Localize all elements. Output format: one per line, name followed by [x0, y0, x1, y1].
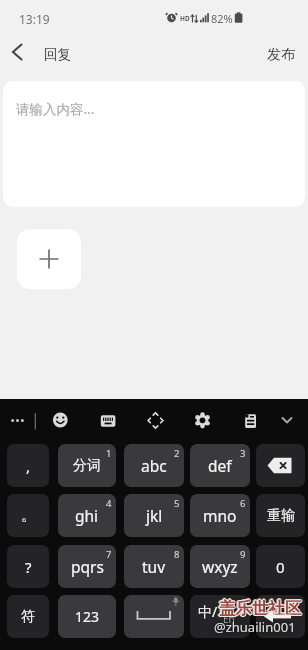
staticText: 中/ [198, 602, 218, 621]
button[interactable]: tuv [124, 545, 184, 588]
staticText: 分词 [73, 457, 101, 475]
staticText: 符 [21, 608, 35, 626]
staticText: 盖乐世社区 [219, 599, 302, 620]
staticText: 8 [174, 548, 180, 561]
staticText: ? [25, 557, 32, 577]
button[interactable]: abc [124, 444, 184, 487]
staticText: 82% [211, 11, 233, 26]
button[interactable]: 分词 [58, 444, 116, 487]
staticText: 请输入内容... [16, 100, 95, 118]
button[interactable] [256, 444, 305, 487]
staticText: 7 [106, 548, 112, 561]
staticText: 3 [240, 447, 246, 460]
staticText: 盖乐世社区 [217, 598, 300, 619]
button[interactable] [17, 229, 81, 289]
button[interactable] [124, 595, 184, 638]
staticText: abc [141, 455, 167, 476]
staticText: , [26, 456, 31, 476]
staticText: En [223, 612, 235, 626]
staticText: mno [203, 505, 237, 526]
staticText: 13:19 [19, 11, 50, 27]
staticText: 盖乐世社区 [219, 599, 302, 620]
button[interactable]: 0 [256, 545, 305, 588]
staticText: 2 [174, 447, 180, 460]
staticText: 6 [240, 497, 246, 510]
staticText: 回复 [44, 46, 71, 63]
button[interactable]: ghi [58, 494, 116, 537]
button[interactable]: pqrs [58, 545, 116, 588]
button[interactable]: ? [7, 545, 49, 588]
staticText: 1 [106, 447, 112, 460]
staticText: jkl [146, 505, 163, 526]
button[interactable]: 重输 [256, 494, 305, 537]
staticText: 盖乐世社区 [219, 597, 302, 618]
staticText: def [208, 455, 232, 476]
button[interactable]: , [7, 444, 49, 487]
button[interactable]: def [190, 444, 250, 487]
staticText: 重输 [267, 507, 295, 525]
button[interactable] [4, 38, 32, 66]
button[interactable]: 符 [7, 595, 49, 638]
button[interactable]: 123 [58, 595, 116, 638]
staticText: 4 [106, 497, 112, 510]
button[interactable]: wxyz [190, 545, 250, 588]
staticText: HD [180, 14, 190, 23]
button[interactable]: 。 [7, 494, 49, 537]
staticText: 盖乐世社区 [219, 598, 302, 619]
button[interactable]: 请输入内容... [3, 81, 305, 207]
staticText: @zhuailin001 [214, 618, 296, 636]
staticText: 9 [240, 548, 246, 561]
staticText: 盖乐世社区 [220, 598, 303, 619]
staticText: 盖乐世社区 [218, 597, 301, 618]
staticText: 盖乐世社区 [218, 599, 301, 620]
button[interactable]: 发布 [259, 41, 303, 69]
staticText: 盖乐世社区 [219, 597, 302, 618]
staticText: 。 [21, 506, 36, 525]
staticText: pqrs [71, 556, 104, 577]
staticText: tuv [142, 556, 166, 577]
staticText: wxyz [202, 556, 238, 577]
staticText: 0 [276, 557, 285, 577]
button[interactable]: 中/ [190, 595, 250, 638]
staticText: 5 [174, 497, 180, 510]
staticText: ghi [75, 505, 99, 526]
staticText: 发布 [267, 46, 295, 64]
staticText: 123 [75, 607, 100, 626]
button[interactable]: mno [190, 494, 250, 537]
button[interactable] [256, 595, 305, 638]
button[interactable]: jkl [124, 494, 184, 537]
